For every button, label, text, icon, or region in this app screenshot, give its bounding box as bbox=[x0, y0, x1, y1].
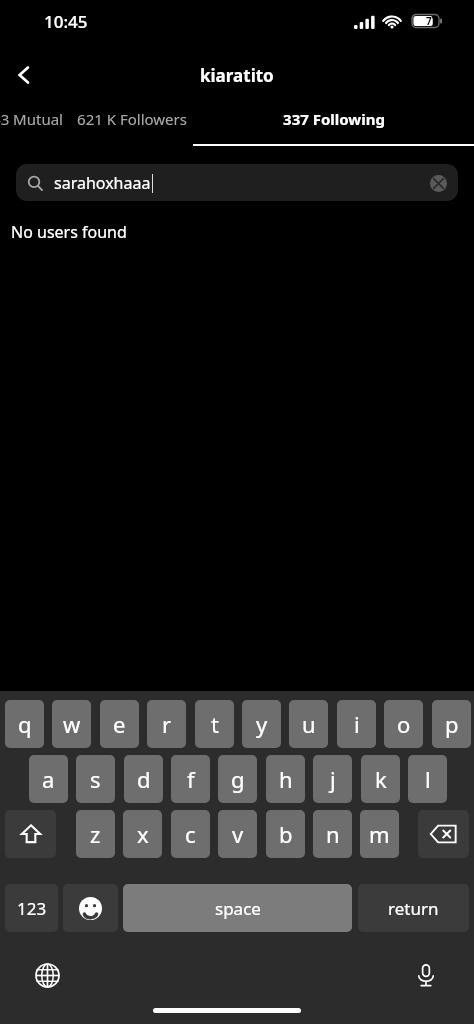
button[interactable]: d bbox=[124, 755, 163, 803]
button[interactable]: q bbox=[5, 700, 44, 748]
staticText: w bbox=[63, 709, 81, 739]
button[interactable]: m bbox=[360, 810, 399, 858]
button[interactable]: Clear text bbox=[423, 168, 453, 198]
staticText: l bbox=[425, 764, 431, 794]
staticText: return bbox=[388, 897, 439, 920]
button[interactable]: y bbox=[242, 700, 281, 748]
button[interactable]: l bbox=[408, 755, 447, 803]
staticText: t bbox=[211, 709, 219, 739]
staticText: i bbox=[354, 709, 360, 739]
button[interactable]: z bbox=[76, 810, 115, 858]
staticText: a bbox=[42, 764, 55, 794]
button[interactable]: j bbox=[313, 755, 352, 803]
staticText: 10:45 bbox=[44, 10, 88, 33]
button[interactable]: v bbox=[218, 810, 257, 858]
staticText: e bbox=[113, 709, 126, 739]
staticText: g bbox=[231, 764, 245, 794]
button[interactable]: f bbox=[171, 755, 210, 803]
staticText: p bbox=[445, 709, 459, 739]
button[interactable]: s bbox=[76, 755, 115, 803]
staticText: 43 Mutual bbox=[0, 109, 63, 129]
button[interactable]: 43 Mutual bbox=[0, 105, 63, 147]
button[interactable]: p bbox=[432, 700, 471, 748]
staticText: y bbox=[256, 709, 268, 739]
staticText: u bbox=[302, 709, 316, 739]
staticText: z bbox=[90, 819, 101, 849]
button[interactable]: u bbox=[289, 700, 328, 748]
button[interactable]: Emoji bbox=[63, 884, 118, 932]
staticText: space bbox=[215, 897, 261, 920]
staticText: v bbox=[232, 819, 244, 849]
staticText: s bbox=[90, 764, 101, 794]
staticText: n bbox=[326, 819, 340, 849]
staticText: No users found bbox=[11, 221, 127, 243]
button[interactable]: e bbox=[100, 700, 139, 748]
staticText: 621 K Followers bbox=[77, 109, 187, 129]
staticText: f bbox=[187, 764, 195, 794]
button[interactable]: 337 Following bbox=[193, 105, 474, 147]
staticText: 77 bbox=[426, 14, 438, 28]
staticText: k bbox=[375, 764, 387, 794]
button[interactable]: i bbox=[337, 700, 376, 748]
staticText: b bbox=[279, 819, 293, 849]
staticText: c bbox=[185, 819, 196, 849]
staticText: o bbox=[397, 709, 411, 739]
staticText: m bbox=[369, 819, 390, 849]
staticText: sarahoxhaaa bbox=[54, 172, 151, 194]
button[interactable]: 123 bbox=[5, 884, 58, 932]
button[interactable]: Voice input bbox=[408, 957, 444, 993]
button[interactable]: Back bbox=[0, 51, 48, 99]
staticText: h bbox=[279, 764, 293, 794]
button[interactable]: k bbox=[361, 755, 400, 803]
staticText: 123 bbox=[17, 897, 47, 920]
button[interactable]: sarahoxhaaa bbox=[16, 164, 458, 201]
button[interactable]: Delete bbox=[418, 810, 469, 858]
button[interactable]: x bbox=[123, 810, 162, 858]
button[interactable]: g bbox=[218, 755, 257, 803]
button[interactable]: Shift bbox=[5, 810, 56, 858]
staticText: j bbox=[330, 764, 336, 794]
button[interactable]: h bbox=[266, 755, 305, 803]
button[interactable]: t bbox=[195, 700, 234, 748]
button[interactable]: 621 K Followers bbox=[77, 105, 187, 147]
button[interactable]: r bbox=[147, 700, 186, 748]
staticText: 337 Following bbox=[283, 109, 385, 129]
button[interactable]: w bbox=[52, 700, 91, 748]
staticText: x bbox=[137, 819, 149, 849]
button[interactable]: b bbox=[266, 810, 305, 858]
staticText: q bbox=[18, 709, 32, 739]
button[interactable]: c bbox=[171, 810, 210, 858]
staticText: d bbox=[137, 764, 151, 794]
button[interactable]: a bbox=[29, 755, 68, 803]
button[interactable]: o bbox=[384, 700, 423, 748]
button[interactable]: space bbox=[123, 884, 352, 932]
staticText: r bbox=[162, 709, 172, 739]
button[interactable]: return bbox=[358, 884, 469, 932]
staticText: kiaratito bbox=[200, 64, 274, 87]
button[interactable]: Switch keyboard language bbox=[29, 957, 65, 993]
button[interactable]: n bbox=[313, 810, 352, 858]
